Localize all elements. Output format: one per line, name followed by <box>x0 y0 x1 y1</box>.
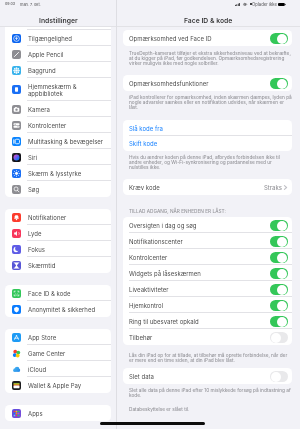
staticText: iCloud <box>28 366 47 373</box>
button[interactable]: Skærm & lysstyrke <box>5 165 111 181</box>
staticText: Skærm & lysstyrke <box>28 170 82 177</box>
button[interactable]: Baggrund <box>5 62 111 78</box>
staticText: Indstillinger <box>39 16 78 24</box>
staticText: Notifikationscenter <box>129 238 270 245</box>
staticText: Anonymitet & sikkerhed <box>28 306 96 313</box>
button[interactable]: Game Center <box>5 345 111 361</box>
staticText: Liveaktiviteter <box>129 286 270 293</box>
staticText: Opmærksomhedsfunktioner <box>129 80 270 87</box>
button[interactable]: Slået til <box>270 252 288 263</box>
button[interactable]: Hjemkontrol <box>123 297 292 313</box>
staticText: Hvis du ændrer koden på denne iPad, afbr… <box>129 154 292 170</box>
staticText: Hjemkontrol <box>129 302 270 309</box>
staticText: Straks <box>264 184 282 191</box>
staticText: Face ID & kode <box>28 290 71 297</box>
staticText: Slet data <box>129 373 270 380</box>
staticText: App Store <box>28 334 57 341</box>
staticText: Face ID & kode <box>184 16 233 24</box>
button[interactable]: Slå kode fra <box>123 120 292 136</box>
button[interactable]: Face ID & kode <box>5 285 111 301</box>
staticText: Apps <box>28 410 43 417</box>
button[interactable]: Slået til <box>270 33 288 44</box>
staticText: TILLAD ADGANG, NÅR ENHEDEN ER LÅST: <box>129 208 292 214</box>
button[interactable]: Slået til <box>270 300 288 311</box>
button[interactable]: Apple Pencil <box>5 46 111 62</box>
button[interactable]: Skærmtid <box>5 257 111 273</box>
button[interactable]: Slået til <box>270 268 288 279</box>
button[interactable]: Multitasking & bevægelser <box>5 133 111 149</box>
button[interactable]: Slået til <box>270 220 288 231</box>
staticText: Fokus <box>28 246 45 253</box>
staticText: Kontrolcenter <box>28 122 67 129</box>
staticText: Slå kode fra <box>129 125 163 132</box>
staticText: man. 7. okt. <box>20 2 41 7</box>
staticText: Skift kode <box>129 140 158 147</box>
button[interactable]: Anonymitet & sikkerhed <box>5 301 111 317</box>
button[interactable]: Opmærksomhed ved Face ID <box>123 30 292 46</box>
staticText: Kamera <box>28 106 50 113</box>
button[interactable]: App Store <box>5 329 111 345</box>
staticText: Kræv kode <box>129 184 264 191</box>
button[interactable]: Skift kode <box>123 136 292 151</box>
staticText: TrueDepth-kameraet tilføjer et ekstra si… <box>129 50 292 66</box>
staticText: Wallet & Apple Pay <box>28 382 82 389</box>
button[interactable]: Kontrolcenter <box>5 117 111 133</box>
button[interactable]: Slået til <box>270 316 288 327</box>
staticText: Oplader ikke <box>252 2 277 7</box>
button[interactable]: Tilgængelighed <box>5 30 111 46</box>
button[interactable]: Slået fra <box>270 371 288 382</box>
staticText: Databeskyttelse er slået til. <box>129 406 190 412</box>
staticText: Widgets på låseskærmen <box>129 270 270 277</box>
button[interactable]: Tilbehør <box>123 329 292 345</box>
staticText: Skærmtid <box>28 262 56 269</box>
staticText: Generelt <box>28 19 53 26</box>
staticText: Tilgængelighed <box>28 35 72 42</box>
button[interactable]: Kontrolcenter <box>123 249 292 265</box>
staticText: Multitasking & bevægelser <box>28 138 104 145</box>
staticText: Notifikationer <box>28 214 67 221</box>
button[interactable]: Wallet & Apple Pay <box>5 377 111 393</box>
staticText: Ring til ubesvaret opkald <box>129 318 270 325</box>
button[interactable]: Siri <box>5 149 111 165</box>
button[interactable]: Fokus <box>5 241 111 257</box>
staticText: Tilbehør <box>129 334 270 341</box>
staticText: Lås din iPad op for at tillade, at tilbe… <box>129 352 292 363</box>
button[interactable]: Generelt <box>5 14 111 30</box>
staticText: Kontrolcenter <box>129 254 270 261</box>
staticText: Slet alle data på denne iPad efter 10 mi… <box>129 387 292 398</box>
button[interactable]: Kræv kode <box>123 179 292 195</box>
button[interactable]: Hjemmeskærm & appbibliotek <box>5 78 111 101</box>
staticText: 09.03 <box>5 2 16 6</box>
staticText: Hjemmeskærm & appbibliotek <box>28 83 77 97</box>
button[interactable]: Slået fra <box>270 332 288 343</box>
button[interactable]: Notifikationer <box>5 209 111 225</box>
button[interactable]: Slået til <box>270 284 288 295</box>
staticText: Opmærksomhed ved Face ID <box>129 35 270 42</box>
button[interactable]: Liveaktiviteter <box>123 281 292 297</box>
button[interactable]: iCloud <box>5 361 111 377</box>
button[interactable]: Notifikationscenter <box>123 233 292 249</box>
button[interactable]: Søg <box>5 181 111 197</box>
staticText: Lyde <box>28 230 42 237</box>
button[interactable]: Slet data <box>123 368 292 384</box>
staticText: Siri <box>28 154 38 161</box>
button[interactable]: Lyde <box>5 225 111 241</box>
staticText: Apple Pencil <box>28 51 64 58</box>
button[interactable]: Kamera <box>5 101 111 117</box>
staticText: Baggrund <box>28 67 56 74</box>
staticText: Oversigten i dag og søg <box>129 222 270 229</box>
staticText: Game Center <box>28 350 66 357</box>
staticText: Søg <box>28 186 40 193</box>
button[interactable]: Slået til <box>270 78 288 89</box>
button[interactable]: Ring til ubesvaret opkald <box>123 313 292 329</box>
button[interactable]: Apps <box>5 405 111 421</box>
button[interactable]: Slået til <box>270 236 288 247</box>
button[interactable]: Opmærksomhedsfunktioner <box>123 75 292 91</box>
button[interactable]: Widgets på låseskærmen <box>123 265 292 281</box>
staticText: iPad kontrollerer for opmærksomhed, inde… <box>129 94 292 110</box>
button[interactable]: Oversigten i dag og søg <box>123 217 292 233</box>
